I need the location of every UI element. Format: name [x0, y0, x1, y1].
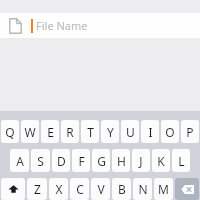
staticText: A: [16, 153, 24, 169]
staticText: P: [186, 124, 194, 140]
button[interactable]: M: [154, 178, 173, 200]
staticText: L: [178, 153, 185, 169]
button[interactable]: N: [133, 178, 152, 200]
button[interactable]: U: [121, 120, 139, 143]
staticText: T: [87, 124, 94, 140]
staticText: X: [55, 181, 63, 197]
button[interactable]: J: [132, 149, 150, 172]
button[interactable]: Q: [1, 120, 19, 143]
staticText: File Name: [36, 18, 88, 33]
button[interactable]: G: [92, 149, 110, 172]
staticText: R: [66, 124, 74, 140]
button[interactable]: X: [49, 178, 68, 200]
button[interactable]: V: [91, 178, 110, 200]
button[interactable]: Shift: [1, 178, 25, 200]
staticText: J: [139, 153, 143, 169]
button[interactable]: Z: [27, 178, 47, 200]
staticText: Z: [34, 181, 41, 197]
button[interactable]: E: [41, 120, 59, 143]
button[interactable]: P: [181, 120, 199, 143]
button[interactable]: Document: [0, 13, 200, 38]
button[interactable]: W: [21, 120, 39, 143]
button[interactable]: R: [61, 120, 79, 143]
staticText: N: [138, 181, 148, 197]
button[interactable]: T: [81, 120, 99, 143]
staticText: V: [97, 181, 105, 197]
staticText: W: [24, 124, 36, 140]
button[interactable]: D: [52, 149, 70, 172]
button[interactable]: F: [72, 149, 90, 172]
staticText: H: [117, 153, 126, 169]
button[interactable]: H: [112, 149, 130, 172]
staticText: O: [165, 124, 175, 140]
staticText: C: [76, 181, 84, 197]
staticText: F: [78, 153, 85, 169]
staticText: E: [47, 124, 54, 140]
staticText: D: [57, 153, 66, 169]
button[interactable]: C: [70, 178, 89, 200]
button[interactable]: A: [10, 149, 29, 172]
button[interactable]: Y: [101, 120, 119, 143]
button[interactable]: K: [152, 149, 170, 172]
button[interactable]: S: [31, 149, 50, 172]
staticText: U: [126, 124, 135, 140]
button[interactable]: I: [141, 120, 159, 143]
staticText: M: [158, 181, 169, 197]
staticText: B: [118, 181, 126, 197]
staticText: G: [97, 153, 106, 169]
button[interactable]: B: [112, 178, 131, 200]
other: Document: [9, 18, 22, 34]
staticText: I: [148, 124, 153, 140]
button[interactable]: L: [172, 149, 190, 172]
button[interactable]: Backspace: [175, 178, 199, 200]
button[interactable]: O: [161, 120, 179, 143]
staticText: K: [157, 153, 165, 169]
staticText: Q: [5, 124, 15, 140]
staticText: Y: [107, 124, 114, 140]
staticText: S: [37, 153, 44, 169]
